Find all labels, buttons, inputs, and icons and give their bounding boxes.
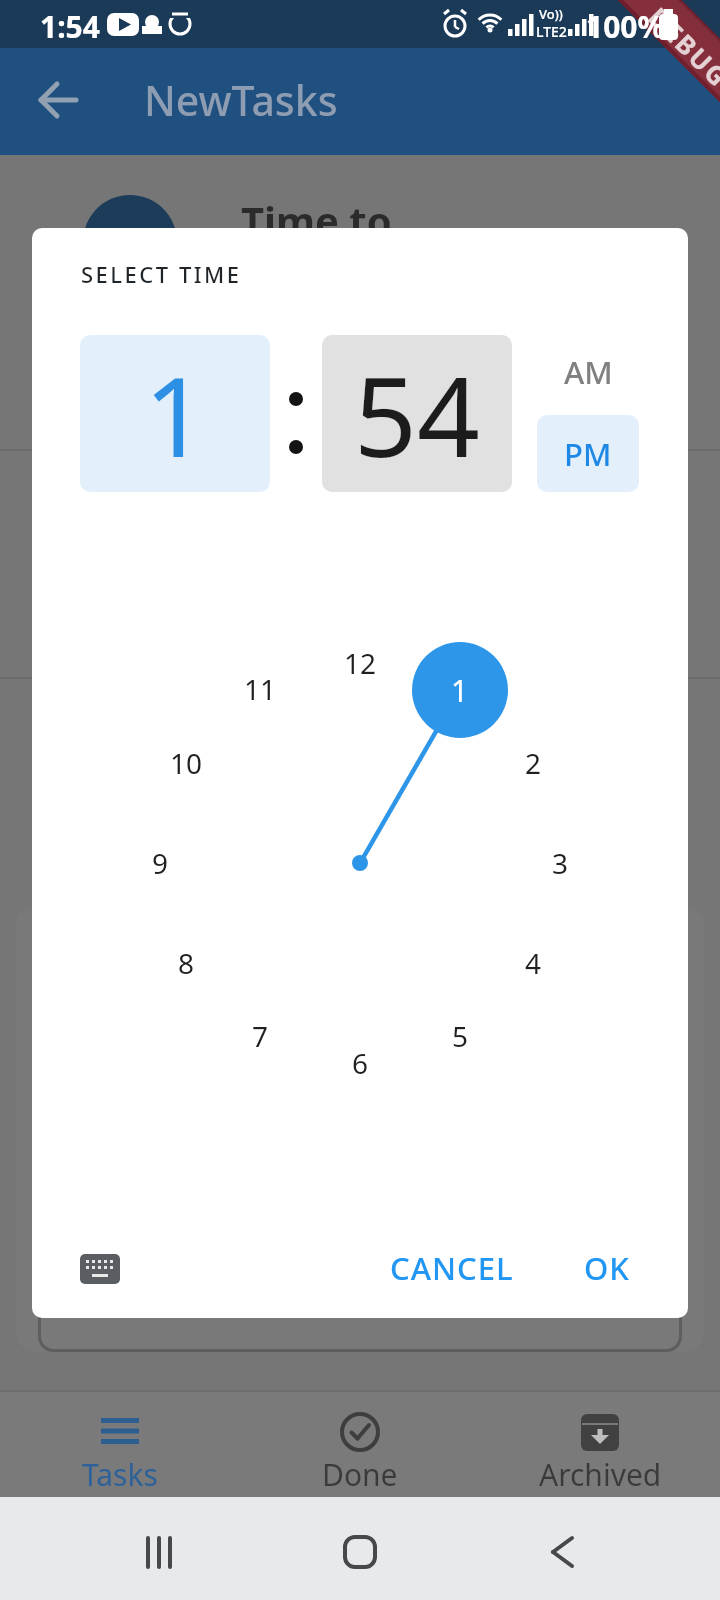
button[interactable]: 9 <box>130 841 190 885</box>
staticText: 11 <box>244 670 277 708</box>
staticText: NewTasks <box>144 72 338 128</box>
staticText: 12 <box>344 644 377 682</box>
staticText: LTE2 <box>536 22 567 40</box>
staticText: 1 <box>451 670 469 711</box>
button[interactable]: 8 <box>156 941 216 985</box>
staticText: 7 <box>252 1017 269 1055</box>
staticText: 9 <box>152 844 169 882</box>
button[interactable]: CANCEL <box>384 1247 520 1289</box>
staticText: OK <box>584 1247 630 1289</box>
button[interactable]: 7 <box>230 1014 290 1058</box>
button[interactable]: PM <box>537 415 639 492</box>
staticText: 2 <box>525 744 542 782</box>
staticText: Archived <box>539 1454 662 1492</box>
button[interactable]: OK <box>567 1247 647 1289</box>
button[interactable]: 1 <box>80 335 270 492</box>
staticText: 1:54 <box>40 6 100 42</box>
staticText: 8 <box>178 944 195 982</box>
button[interactable]: 12 <box>330 641 390 685</box>
button[interactable]: 2 <box>503 741 563 785</box>
staticText: 10 <box>170 744 203 782</box>
button[interactable] <box>80 1254 120 1284</box>
staticText: DEBUG <box>642 0 720 95</box>
button[interactable]: 3 <box>530 841 590 885</box>
staticText: 100% <box>586 6 665 42</box>
staticText: 54 <box>354 339 480 489</box>
staticText: Done <box>322 1454 398 1492</box>
staticText: AM <box>564 351 613 393</box>
button[interactable] <box>36 82 80 118</box>
button[interactable]: AM <box>538 345 638 399</box>
staticText: Vo)) <box>539 5 563 23</box>
staticText: CANCEL <box>390 1247 514 1289</box>
button[interactable]: Tasks <box>40 1398 200 1493</box>
staticText: 5 <box>452 1017 469 1055</box>
staticText: 6 <box>352 1044 369 1082</box>
button[interactable]: 5 <box>430 1014 490 1058</box>
button[interactable]: 11 <box>230 667 290 711</box>
staticText: PM <box>564 433 612 475</box>
button[interactable]: 4 <box>503 941 563 985</box>
staticText: SELECT TIME <box>81 259 242 289</box>
button[interactable] <box>120 1517 200 1587</box>
staticText: Time to <box>241 193 392 247</box>
staticText: 3 <box>552 844 569 882</box>
button[interactable]: Done <box>280 1398 440 1493</box>
button[interactable] <box>320 1517 400 1587</box>
button[interactable]: 6 <box>330 1041 390 1085</box>
staticText: 1 <box>144 339 207 489</box>
button[interactable]: 10 <box>156 741 216 785</box>
button[interactable] <box>522 1517 602 1587</box>
staticText: 4 <box>525 944 542 982</box>
staticText: Tasks <box>82 1454 158 1492</box>
button[interactable]: Archived <box>520 1398 680 1493</box>
button[interactable]: 1 <box>412 642 508 738</box>
button[interactable]: 54 <box>322 335 512 492</box>
